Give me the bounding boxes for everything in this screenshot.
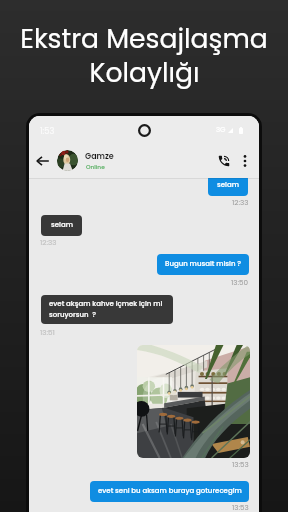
staticText: Online [86, 163, 105, 171]
staticText: 13:50 [231, 277, 249, 287]
staticText: Gamze [85, 151, 114, 162]
button[interactable]: Gamze [84, 146, 204, 174]
staticText: Bugun musait misin ? [165, 259, 242, 269]
button[interactable]: More options [234, 150, 256, 172]
staticText: evet akşam kahve içmek için mi soruyorsu… [49, 299, 163, 319]
staticText: 13:53 [232, 502, 249, 512]
button[interactable]: selam [41, 215, 82, 236]
button[interactable]: evet akşam kahve içmek için mi soruyorsu… [41, 295, 173, 324]
staticText: 13:53 [232, 459, 249, 469]
staticText: Kolaylığı [89, 54, 200, 91]
staticText: 1:53 [40, 125, 55, 136]
button[interactable]: Bugun musait misin ? [157, 254, 249, 275]
button[interactable]: Photo of a cafe [137, 345, 250, 458]
button[interactable]: evet seni bu aksam buraya goturecegim [90, 481, 249, 502]
staticText: Ekstra Mesajlaşma [20, 20, 268, 57]
button[interactable]: Gamze profile photo [57, 150, 78, 171]
staticText: 12:33 [232, 197, 249, 207]
staticText: 3G [216, 125, 226, 135]
staticText: 12:33 [40, 237, 57, 247]
staticText: selam [51, 220, 73, 230]
staticText: selam [217, 180, 239, 190]
button[interactable]: selam [208, 175, 248, 196]
button[interactable]: Back [31, 150, 53, 172]
button[interactable]: Call [213, 150, 235, 172]
staticText: evet seni bu aksam buraya goturecegim [98, 486, 242, 496]
staticText: 13:51 [40, 327, 55, 337]
